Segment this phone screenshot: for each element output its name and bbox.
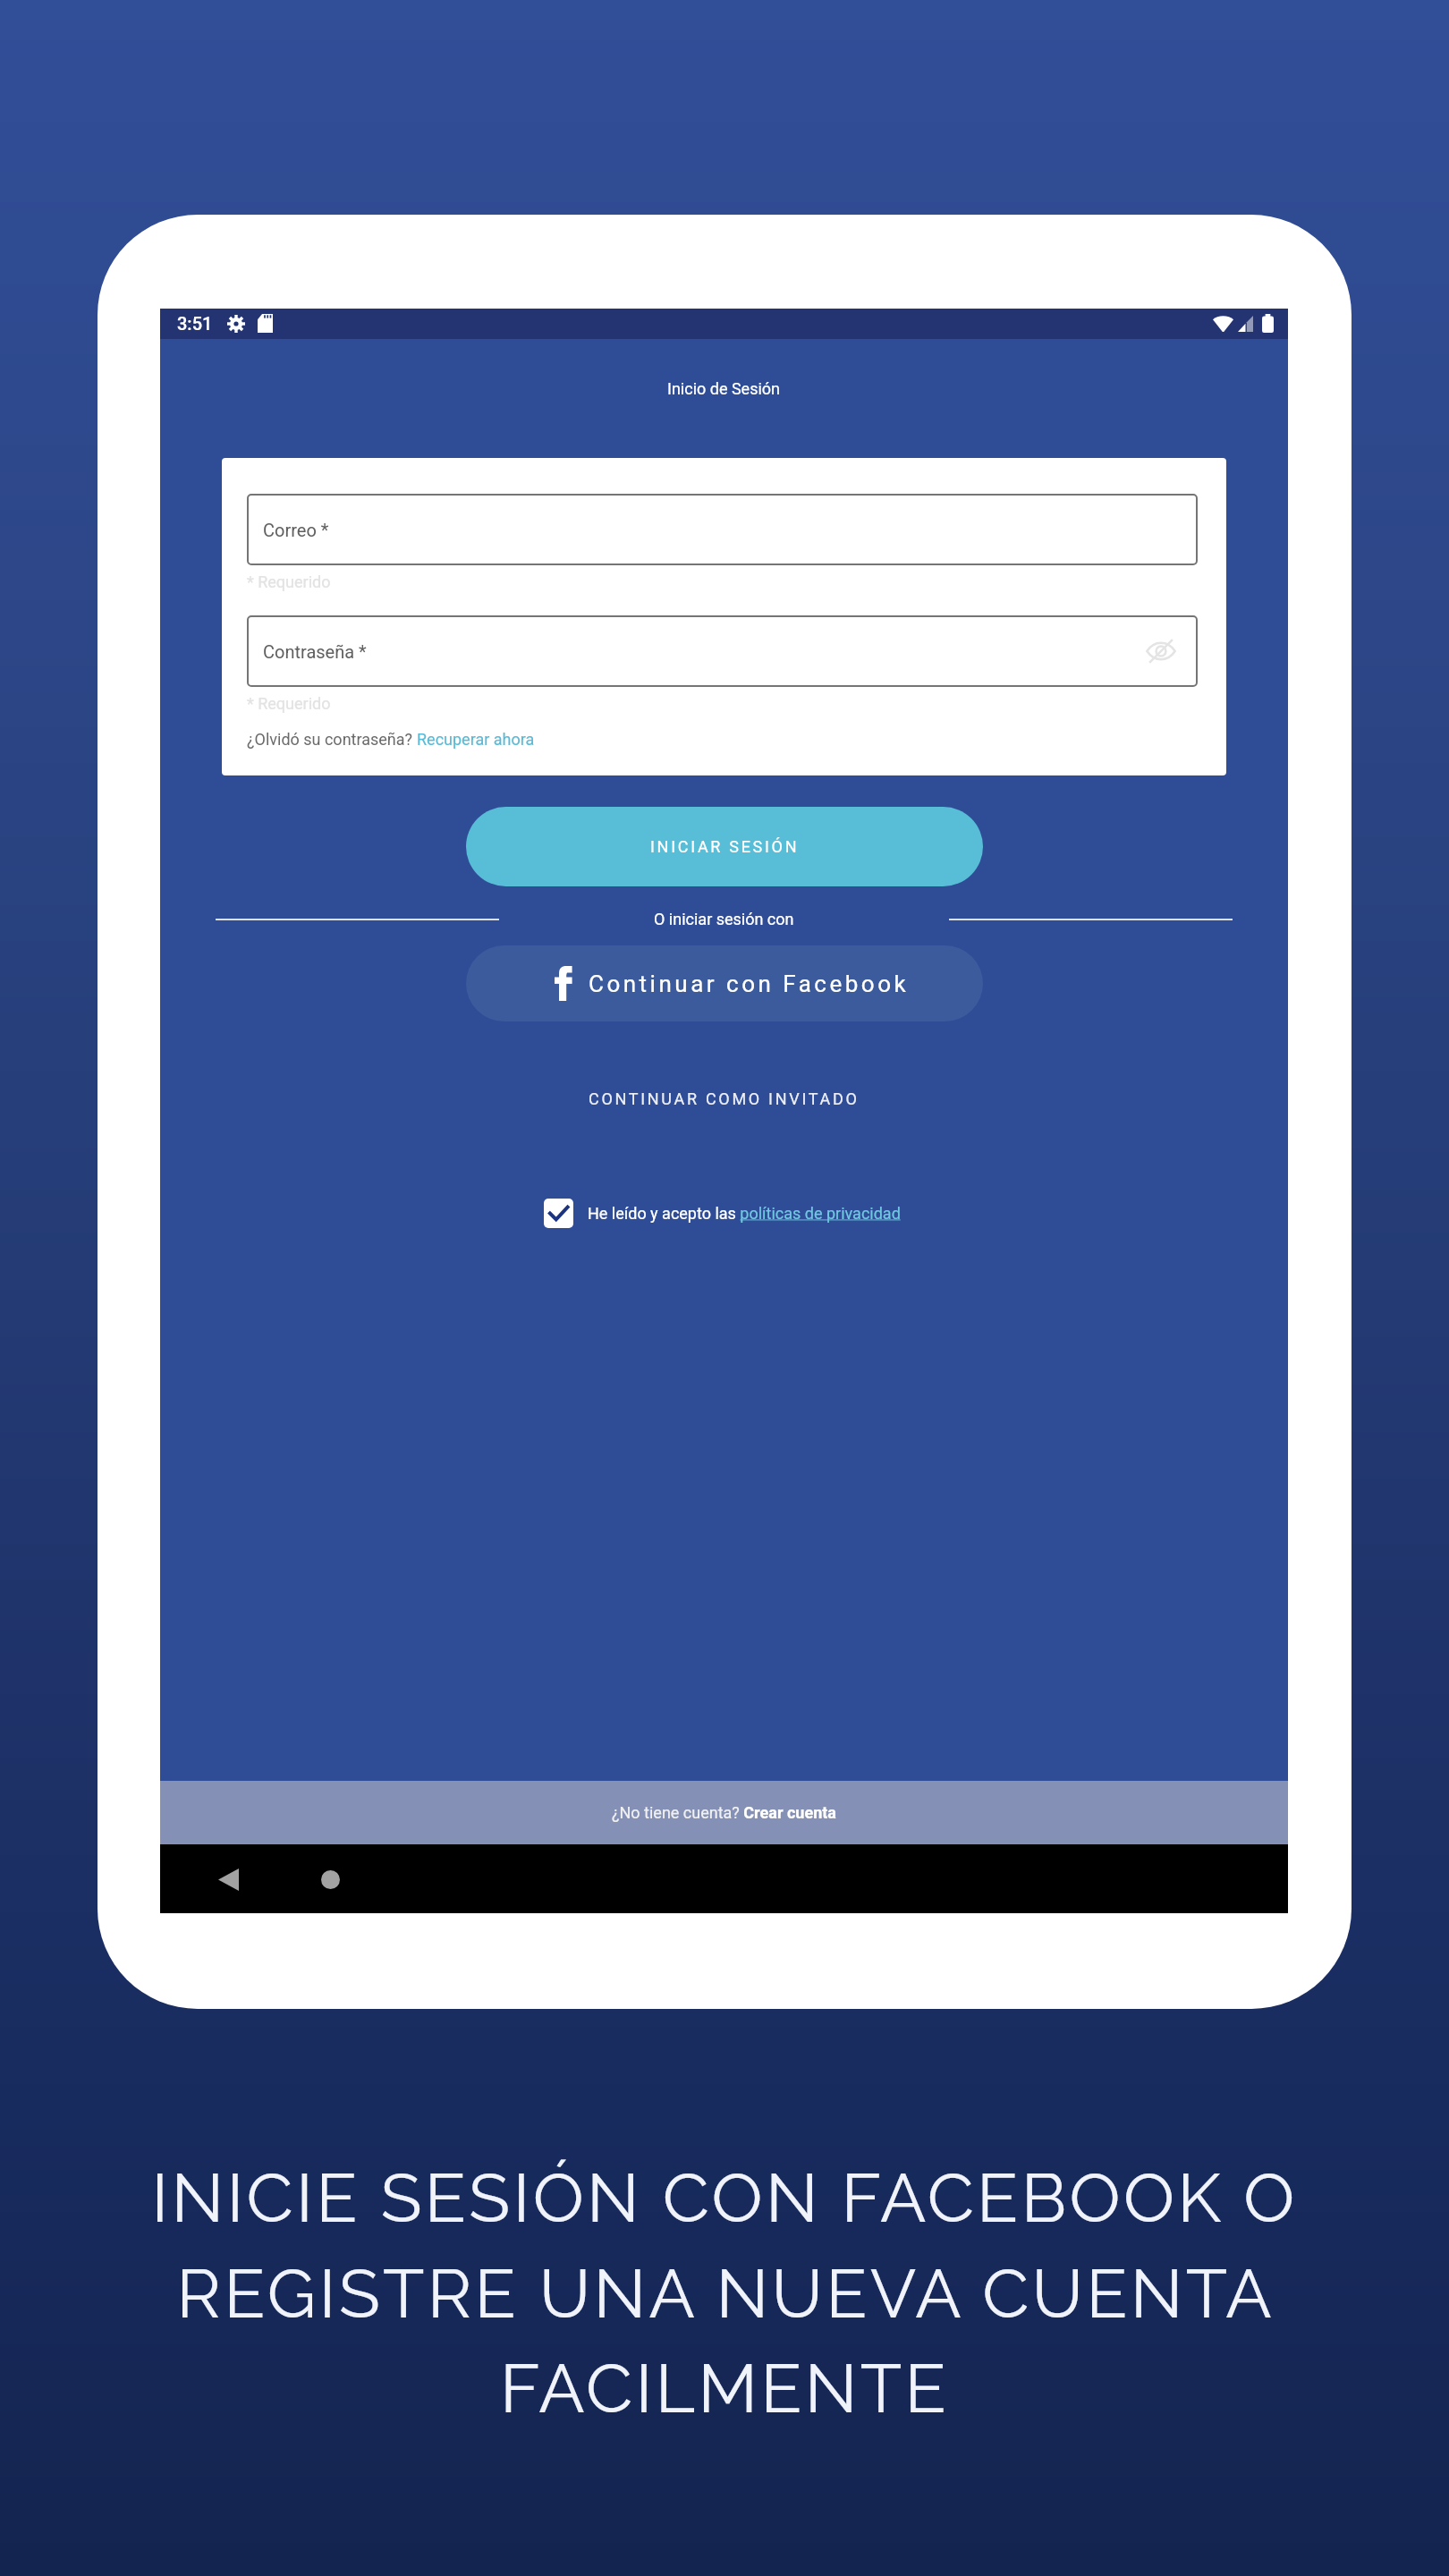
staticText: He leído y acepto las políticas de priva… — [588, 1204, 905, 1223]
button[interactable]: ¿Olvidó su contraseña? — [247, 730, 535, 749]
staticText: * Requerido — [247, 694, 331, 713]
button[interactable]: Continuar con Facebook — [466, 945, 983, 1021]
button[interactable]: Acepto las politicas de privacidad — [544, 1199, 573, 1228]
button[interactable]: Contraseña * — [247, 615, 1198, 687]
staticText: Inicio de Sesión — [667, 379, 781, 398]
button[interactable]: INICIAR SESIÓN — [466, 807, 983, 886]
staticText: 3:51 — [177, 313, 213, 334]
staticText: ¿No tiene cuenta? Crear cuenta — [612, 1803, 836, 1822]
staticText: Continuar con Facebook — [589, 970, 910, 997]
button[interactable]: ¿No tiene cuenta? Crear cuenta — [160, 1781, 1288, 1844]
staticText: ¿Olvidó su contraseña? — [247, 730, 417, 749]
staticText: * Requerido — [247, 572, 331, 591]
staticText: Recuperar ahora — [417, 730, 535, 749]
button[interactable]: CONTINUAR COMO INVITADO — [569, 1079, 879, 1119]
staticText: Contraseña * — [263, 641, 367, 662]
staticText: INICIE SESIÓN CON FACEBOOK O REGISTRE UN… — [72, 2158, 1377, 2428]
staticText: Correo * — [263, 520, 329, 540]
button[interactable]: Correo * — [247, 494, 1198, 565]
staticText: INICIAR SESIÓN — [650, 837, 800, 856]
button[interactable]: Back — [201, 1852, 255, 1906]
button[interactable]: Home — [303, 1852, 357, 1906]
staticText: CONTINUAR COMO INVITADO — [589, 1089, 860, 1108]
staticText: O iniciar sesión con — [654, 910, 794, 928]
